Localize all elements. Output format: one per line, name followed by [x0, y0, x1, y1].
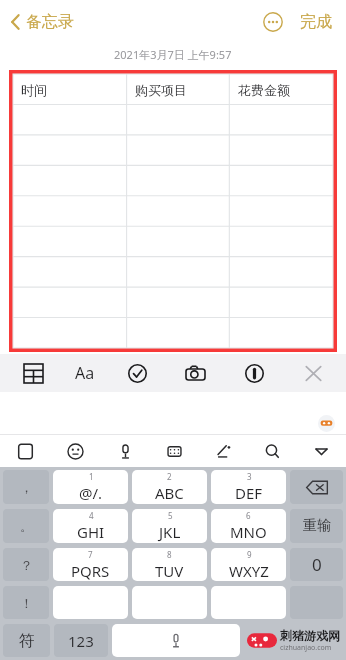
button[interactable]: Handwriting — [199, 435, 248, 467]
button[interactable]: Account — [318, 415, 335, 432]
button[interactable]: 2 — [132, 470, 207, 504]
staticText: @/. — [79, 483, 103, 503]
button[interactable]: Camera — [178, 356, 212, 390]
button[interactable]: 5 — [132, 509, 207, 543]
button[interactable]: 0 — [290, 548, 343, 581]
button[interactable]: Checklist — [120, 356, 154, 390]
button[interactable]: Hide keyboard — [297, 435, 346, 467]
staticText: 7 — [88, 549, 93, 560]
staticText: GHI — [77, 522, 105, 542]
staticText: 备忘录 — [26, 12, 74, 32]
staticText: WXYZ — [229, 561, 269, 581]
staticText: 6 — [246, 510, 251, 521]
button[interactable] — [53, 586, 128, 619]
button[interactable] — [132, 586, 207, 619]
button[interactable]: 7 — [53, 548, 128, 581]
button[interactable]: Delete — [290, 470, 343, 504]
staticText: MNO — [230, 522, 267, 542]
button[interactable]: 符 — [3, 624, 50, 657]
staticText: ， — [20, 479, 33, 495]
staticText: ？ — [20, 557, 33, 573]
staticText: 刺猪游戏网 — [280, 628, 340, 643]
button[interactable]: 8 — [132, 548, 207, 581]
staticText: 4 — [89, 510, 94, 521]
button[interactable]: Voice input — [100, 435, 150, 467]
staticText: 符 — [19, 631, 35, 651]
staticText: 时间 — [21, 82, 47, 98]
button[interactable]: Sogou IME — [0, 435, 50, 467]
button[interactable]: Keyboard layout — [150, 435, 199, 467]
staticText: 2021年3月7日 上午9:57 — [114, 47, 232, 62]
button[interactable]: 4 — [53, 509, 128, 543]
staticText: PQRS — [71, 561, 110, 581]
button[interactable]: Search — [248, 435, 297, 467]
staticText: 购买项目 — [135, 82, 187, 98]
staticText: ！ — [20, 595, 33, 611]
button[interactable]: ？ — [3, 548, 49, 581]
button[interactable]: 重输 — [290, 509, 343, 543]
staticText: DEF — [235, 483, 263, 503]
staticText: 8 — [167, 549, 172, 560]
staticText: 9 — [247, 549, 252, 560]
staticText: 完成 — [300, 12, 332, 32]
button[interactable]: Insert table — [16, 356, 50, 390]
button[interactable]: 3 — [211, 470, 286, 504]
staticText: cizhuanjao.com — [280, 643, 332, 653]
staticText: ABC — [155, 483, 184, 503]
button[interactable]: 完成 — [296, 8, 336, 36]
button[interactable]: More options — [258, 7, 288, 37]
staticText: 2 — [167, 471, 172, 482]
button[interactable]: Emoji — [50, 435, 100, 467]
button[interactable] — [211, 586, 286, 619]
button[interactable]: 9 — [211, 548, 286, 581]
button[interactable]: 123 — [54, 624, 108, 657]
button[interactable]: Voice — [112, 624, 240, 657]
staticText: 花费金额 — [238, 82, 290, 98]
button[interactable]: Aa — [75, 362, 95, 384]
button[interactable]: Close — [296, 356, 330, 390]
staticText: TUV — [155, 561, 184, 581]
staticText: 3 — [247, 471, 252, 482]
button[interactable]: 。 — [3, 509, 49, 543]
button[interactable]: 6 — [211, 509, 286, 543]
button[interactable]: Markup — [237, 356, 271, 390]
button[interactable]: ， — [3, 470, 49, 504]
button[interactable]: 1 — [53, 470, 128, 504]
staticText: Aa — [75, 362, 95, 384]
button[interactable]: 备忘录 — [6, 8, 78, 36]
staticText: 123 — [68, 631, 94, 651]
staticText: 1 — [89, 471, 94, 482]
button[interactable]: ！ — [3, 586, 49, 619]
staticText: JKL — [159, 522, 181, 542]
staticText: 。 — [20, 518, 33, 534]
staticText: 5 — [168, 510, 173, 521]
staticText: 0 — [312, 553, 322, 576]
staticText: 重输 — [303, 517, 331, 535]
